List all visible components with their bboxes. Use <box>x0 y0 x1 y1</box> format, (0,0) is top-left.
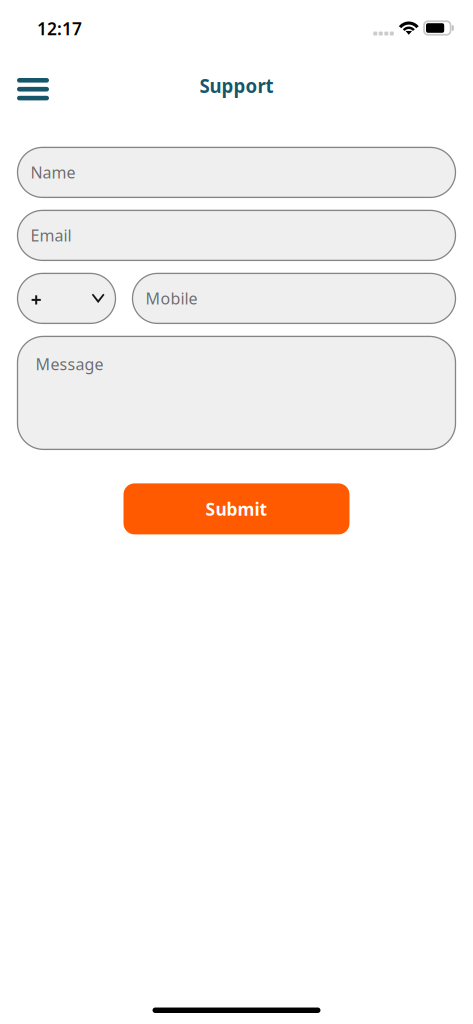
staticText: 12:17 <box>37 17 82 40</box>
staticText: Email <box>30 225 71 246</box>
staticText: Support <box>199 73 273 98</box>
button[interactable]: Email <box>17 210 455 260</box>
button[interactable]: Message <box>17 336 455 449</box>
staticText: Submit <box>205 497 267 520</box>
staticText: Message <box>35 353 103 375</box>
button[interactable]: Submit <box>123 483 349 534</box>
button[interactable]: Name <box>17 147 455 197</box>
button[interactable]: Menu <box>11 67 55 111</box>
staticText: Name <box>30 162 75 183</box>
button[interactable]: Country code <box>17 273 115 323</box>
button[interactable]: Mobile <box>132 273 455 323</box>
staticText: Mobile <box>145 288 197 309</box>
